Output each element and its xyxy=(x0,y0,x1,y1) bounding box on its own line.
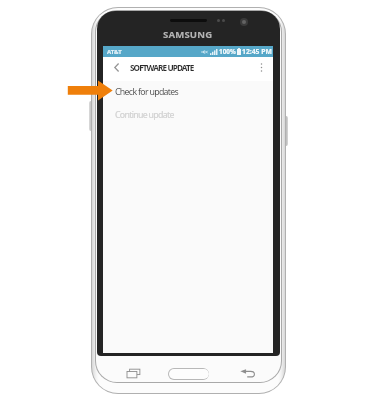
staticText: AT&T xyxy=(107,48,122,56)
button[interactable]: Continue update xyxy=(103,104,273,127)
staticText: 12:45 PM xyxy=(242,47,272,56)
button[interactable]: Home xyxy=(168,368,209,380)
staticText: SOFTWARE UPDATE xyxy=(130,62,194,73)
staticText: Check for updates xyxy=(115,86,179,98)
button[interactable]: Navigate up xyxy=(106,57,127,78)
staticText: Continue update xyxy=(115,109,174,121)
staticText: SAMSUNG xyxy=(163,28,213,41)
staticText: 100% xyxy=(219,47,236,56)
button[interactable]: Recent apps xyxy=(125,365,141,381)
button[interactable]: Back xyxy=(240,365,256,381)
button[interactable]: Check for updates xyxy=(103,81,273,104)
button[interactable]: More options xyxy=(251,57,272,78)
